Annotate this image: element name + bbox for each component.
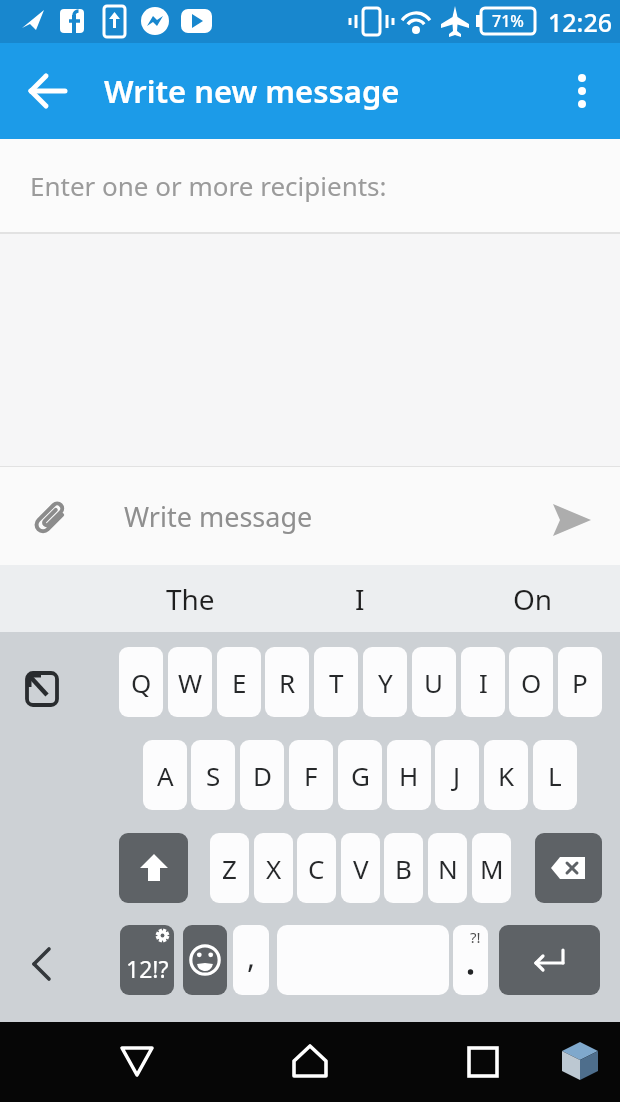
button[interactable] xyxy=(459,1038,507,1086)
button[interactable]: A xyxy=(143,740,187,810)
button[interactable]: H xyxy=(387,740,431,810)
staticText: N xyxy=(438,851,458,886)
button[interactable]: I xyxy=(290,565,430,632)
button[interactable]: X xyxy=(254,833,293,903)
staticText: P xyxy=(572,665,588,700)
button[interactable] xyxy=(183,925,227,995)
staticText: D xyxy=(253,758,272,793)
button[interactable]: L xyxy=(533,740,577,810)
staticText: R xyxy=(279,665,296,700)
staticText: The xyxy=(166,580,215,618)
button[interactable] xyxy=(20,942,64,986)
staticText: Write message xyxy=(124,498,313,535)
button[interactable]: M xyxy=(472,833,511,903)
button[interactable] xyxy=(0,139,620,232)
staticText: M xyxy=(480,851,504,886)
staticText: Write new message xyxy=(104,70,400,112)
staticText: Enter one or more recipients: xyxy=(30,168,387,203)
staticText: J xyxy=(453,758,461,793)
button[interactable]: T xyxy=(314,647,358,717)
button[interactable]: , xyxy=(233,925,269,995)
button[interactable]: G xyxy=(338,740,382,810)
staticText: 12:26 xyxy=(548,5,613,39)
button[interactable]: F xyxy=(289,740,333,810)
button[interactable] xyxy=(558,67,606,115)
staticText: V xyxy=(353,851,369,886)
staticText: E xyxy=(232,665,247,700)
button[interactable]: W xyxy=(168,647,212,717)
staticText: On xyxy=(513,580,553,618)
staticText: Y xyxy=(378,665,393,700)
button[interactable]: Q xyxy=(119,647,163,717)
staticText: W xyxy=(178,665,203,700)
button[interactable]: Y xyxy=(363,647,407,717)
staticText: F xyxy=(304,758,318,793)
button[interactable] xyxy=(24,493,72,541)
staticText: , xyxy=(247,936,256,977)
button[interactable] xyxy=(535,833,602,903)
button[interactable]: ?! xyxy=(453,925,488,995)
button[interactable] xyxy=(20,666,64,710)
button[interactable]: R xyxy=(265,647,309,717)
button[interactable] xyxy=(24,67,72,115)
staticText: B xyxy=(395,851,412,886)
staticText: A xyxy=(157,758,174,793)
button[interactable]: J xyxy=(435,740,479,810)
staticText: I xyxy=(355,580,365,618)
staticText: G xyxy=(351,758,370,793)
staticText: Q xyxy=(131,665,152,700)
button[interactable]: The xyxy=(110,565,270,632)
button[interactable]: U xyxy=(412,647,456,717)
button[interactable]: S xyxy=(191,740,235,810)
staticText: ?! xyxy=(470,927,481,947)
staticText: 12!? xyxy=(126,953,169,984)
staticText: O xyxy=(521,665,542,700)
button[interactable]: Z xyxy=(210,833,249,903)
button[interactable]: E xyxy=(217,647,261,717)
button[interactable]: P xyxy=(558,647,602,717)
staticText: L xyxy=(548,758,562,793)
staticText: Z xyxy=(222,851,237,886)
staticText: I xyxy=(479,665,488,700)
staticText: H xyxy=(399,758,419,793)
button[interactable] xyxy=(277,925,449,995)
button[interactable]: C xyxy=(297,833,336,903)
staticText: T xyxy=(329,665,344,700)
staticText: U xyxy=(424,665,444,700)
button[interactable]: K xyxy=(484,740,528,810)
button[interactable]: N xyxy=(428,833,467,903)
staticText: S xyxy=(206,758,221,793)
button[interactable] xyxy=(119,833,188,903)
button[interactable]: V xyxy=(341,833,380,903)
button[interactable]: O xyxy=(509,647,553,717)
button[interactable]: B xyxy=(384,833,423,903)
staticText: 71% xyxy=(492,10,524,32)
staticText: X xyxy=(266,851,282,886)
button[interactable] xyxy=(113,1038,161,1086)
button[interactable] xyxy=(499,925,600,995)
staticText: C xyxy=(308,851,325,886)
button[interactable] xyxy=(286,1038,334,1086)
button[interactable]: D xyxy=(240,740,284,810)
button[interactable] xyxy=(544,494,596,542)
staticText: K xyxy=(498,758,515,793)
button[interactable]: On xyxy=(463,565,603,632)
button[interactable]: 12!? xyxy=(120,925,174,995)
button[interactable]: I xyxy=(461,647,505,717)
